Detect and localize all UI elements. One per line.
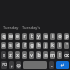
button[interactable]: r	[22, 33, 27, 40]
staticText: p	[65, 33, 69, 40]
staticText: l	[59, 42, 61, 49]
button[interactable]: o	[57, 33, 62, 40]
staticText: Tuesday's	[22, 25, 41, 30]
button[interactable]: .	[49, 61, 54, 69]
staticText: u	[44, 33, 48, 40]
button[interactable]: b	[36, 51, 41, 59]
button[interactable]: d	[15, 42, 20, 49]
staticText: m	[50, 52, 55, 59]
staticText: h	[37, 42, 41, 49]
staticText: ☺	[16, 63, 21, 68]
button[interactable]: w	[8, 33, 13, 40]
button[interactable]: h	[36, 42, 41, 49]
staticText: .	[51, 62, 53, 69]
staticText: f	[24, 42, 26, 49]
staticText: a	[2, 42, 5, 49]
button[interactable]: z	[8, 51, 13, 59]
button[interactable]: x	[15, 51, 20, 59]
staticText: ,	[11, 62, 13, 69]
button[interactable]: g	[29, 42, 34, 49]
staticText: ⌫	[64, 53, 69, 58]
button[interactable]: m	[50, 51, 55, 59]
button[interactable]: ☺	[16, 61, 21, 69]
button[interactable]: c	[22, 51, 27, 59]
button[interactable]: l	[57, 42, 62, 49]
button[interactable]: !	[57, 51, 62, 59]
button[interactable]: ,	[9, 61, 14, 69]
button[interactable]: s	[8, 42, 13, 49]
button[interactable]: ⌫	[64, 51, 69, 59]
button[interactable]: f	[22, 42, 27, 49]
staticText: !	[59, 52, 61, 59]
button[interactable]: a	[1, 42, 6, 49]
staticText: v	[30, 52, 33, 59]
button[interactable]: ↵	[56, 61, 69, 69]
staticText: q	[2, 33, 6, 40]
button[interactable]: p	[64, 33, 69, 40]
button[interactable]: space	[23, 61, 47, 69]
button[interactable]: u	[43, 33, 48, 40]
button[interactable]: y	[36, 33, 41, 40]
staticText: ↵	[60, 62, 65, 68]
staticText: z	[9, 52, 12, 59]
staticText: t	[31, 33, 33, 40]
staticText: w	[9, 33, 13, 40]
staticText: e	[16, 33, 19, 40]
button[interactable]: Tuesday	[0, 22, 21, 32]
staticText: g	[30, 42, 34, 49]
button[interactable]: ?12	[1, 61, 7, 69]
button[interactable]: '	[64, 42, 69, 49]
button[interactable]: k	[50, 42, 55, 49]
staticText: j	[45, 42, 47, 49]
staticText: y	[37, 33, 40, 40]
staticText: k	[51, 42, 54, 49]
button[interactable]: n	[43, 51, 48, 59]
button[interactable]: j	[43, 42, 48, 49]
button[interactable]: e	[15, 33, 20, 40]
staticText: ⇧	[2, 53, 6, 58]
button[interactable]: ⇧	[1, 51, 6, 59]
staticText: s	[9, 42, 12, 49]
staticText: r	[23, 33, 26, 40]
button[interactable]: q	[1, 33, 6, 40]
staticText: i	[52, 33, 54, 40]
staticText: ?12	[2, 63, 7, 67]
staticText: x	[16, 52, 19, 59]
staticText: '	[66, 42, 68, 49]
button[interactable]: i	[50, 33, 55, 40]
button[interactable]: t	[29, 33, 34, 40]
button[interactable]: v	[29, 51, 34, 59]
staticText: Tuesday	[3, 25, 19, 30]
staticText: d	[16, 42, 20, 49]
staticText: c	[23, 52, 26, 59]
staticText: b	[37, 52, 41, 59]
staticText: o	[58, 33, 62, 40]
button[interactable]: Tuesday's	[21, 22, 42, 32]
staticText: n	[44, 52, 48, 59]
